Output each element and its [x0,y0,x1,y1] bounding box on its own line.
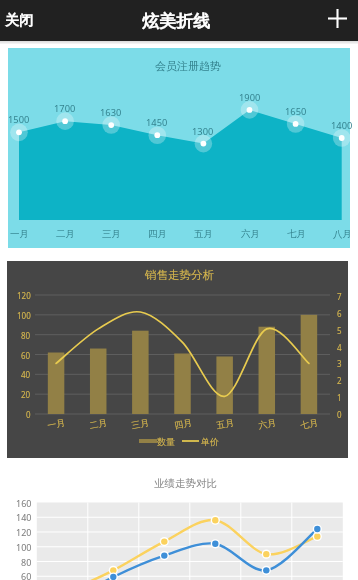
button[interactable]: Add [316,0,358,41]
staticText: 120 [17,290,31,301]
staticText: 业绩走势对比 [154,477,217,490]
staticText: 五月 [194,228,213,240]
staticText: 二月 [88,416,108,431]
staticText: 二月 [56,228,75,240]
staticText: 7 [337,291,342,302]
staticText: 四月 [148,228,167,240]
staticText: 1630 [100,106,122,119]
staticText: 160 [16,497,32,509]
staticText: 四月 [173,416,193,431]
staticText: 1300 [192,125,214,138]
staticText: 关闭 [5,12,33,30]
staticText: 1 [337,392,342,403]
staticText: 六月 [257,416,277,431]
staticText: 六月 [241,228,260,240]
staticText: 1500 [8,113,30,126]
staticText: 80 [21,330,31,341]
staticText: 2 [337,375,342,386]
staticText: 数量 [157,436,175,447]
staticText: 炫美折线 [142,11,210,31]
staticText: 七月 [287,228,306,240]
staticText: 100 [17,310,31,321]
staticText: 单价 [201,436,219,447]
staticText: 0 [26,409,31,420]
staticText: 1450 [146,116,168,129]
button[interactable]: 会员注册趋势 [8,48,350,248]
staticText: 40 [21,369,31,380]
staticText: 60 [21,570,32,580]
staticText: 七月 [299,416,319,431]
staticText: 三月 [102,228,121,240]
staticText: 80 [21,556,32,568]
staticText: 140 [16,511,32,523]
staticText: 0 [337,409,342,420]
staticText: 1400 [331,119,353,132]
staticText: 6 [337,308,342,319]
button[interactable]: 关闭 [0,0,43,41]
staticText: 3 [337,358,342,369]
staticText: 4 [337,342,342,353]
staticText: 5 [337,325,342,336]
staticText: 1700 [54,102,76,115]
button[interactable]: 业绩走势对比 [0,469,358,580]
staticText: 1900 [239,91,261,104]
button[interactable]: 销售走势分析 [7,261,348,458]
staticText: 120 [16,526,32,538]
staticText: 20 [21,389,31,400]
staticText: 八月 [333,228,352,240]
staticText: 1650 [285,105,307,118]
staticText: 三月 [130,416,150,431]
staticText: 60 [21,350,31,361]
staticText: 一月 [46,416,66,431]
staticText: 会员注册趋势 [155,59,221,73]
staticText: 一月 [10,228,29,240]
staticText: 销售走势分析 [145,268,214,282]
staticText: 五月 [215,416,235,431]
staticText: 100 [16,541,32,553]
